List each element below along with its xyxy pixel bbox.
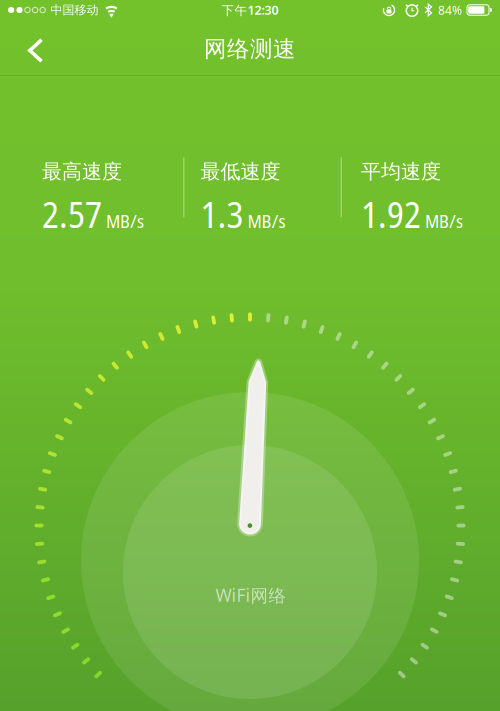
staticText: 中国移动 — [50, 2, 98, 17]
staticText: MB/s — [106, 208, 144, 233]
staticText: 1.92 — [361, 190, 421, 239]
staticText: WiFi网络 — [215, 583, 286, 607]
staticText: MB/s — [425, 208, 463, 233]
button[interactable]: Back — [14, 26, 57, 75]
staticText: 平均速度 — [361, 159, 441, 184]
staticText: 下午12:30 — [221, 1, 278, 18]
staticText: 84% — [438, 2, 462, 18]
staticText: MB/s — [247, 208, 285, 233]
staticText: 最低速度 — [200, 159, 280, 184]
staticText: 网络测速 — [204, 35, 296, 63]
staticText: 1.3 — [200, 190, 243, 239]
staticText: 2.57 — [42, 190, 102, 239]
staticText: 最高速度 — [42, 159, 122, 184]
